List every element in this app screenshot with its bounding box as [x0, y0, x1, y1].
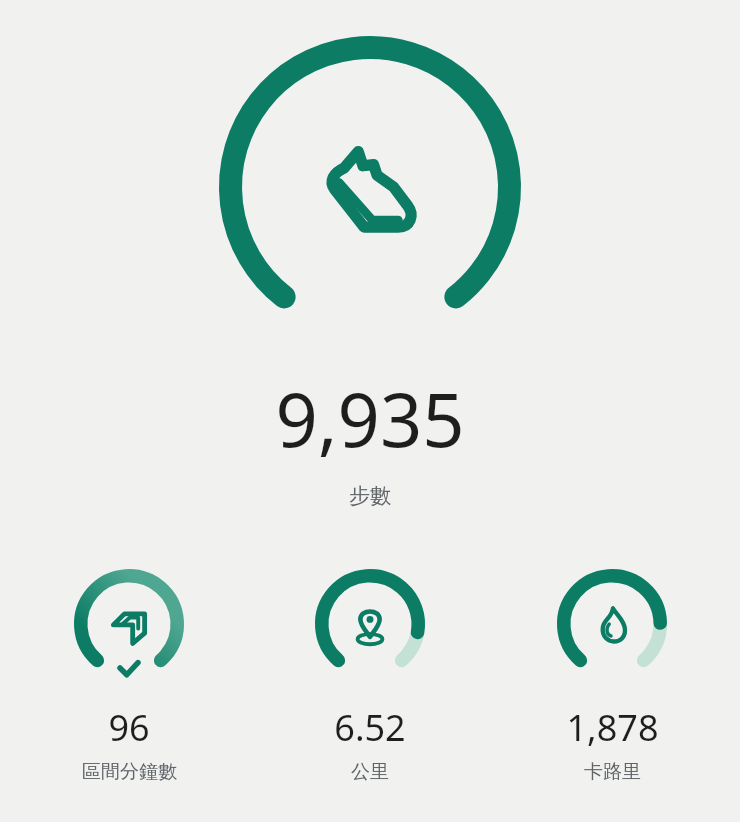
staticText: 9,935	[275, 368, 465, 469]
button[interactable]: Calories	[499, 549, 725, 784]
button[interactable]: Distance	[257, 549, 483, 784]
staticText: 區間分鐘數	[82, 760, 177, 784]
staticText: 公里	[351, 760, 389, 784]
staticText: 6.52	[334, 703, 406, 752]
button[interactable]: Heart zone minutes	[16, 549, 242, 784]
staticText: 卡路里	[584, 760, 641, 784]
staticText: 1,878	[566, 703, 659, 752]
staticText: 步數	[349, 483, 391, 509]
button[interactable]: Steps gauge	[207, 24, 533, 350]
staticText: 96	[108, 703, 150, 752]
